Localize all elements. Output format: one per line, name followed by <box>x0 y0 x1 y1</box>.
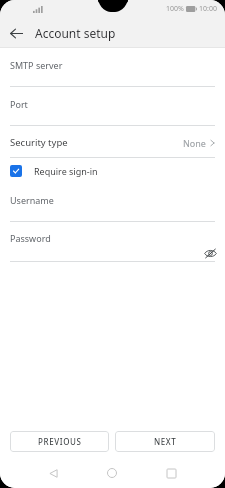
button[interactable]: SMTP server <box>0 48 225 87</box>
staticText: 100% <box>166 4 184 14</box>
button[interactable]: Port <box>0 87 225 126</box>
button[interactable]: Back <box>42 462 64 484</box>
button[interactable]: PREVIOUS <box>10 431 109 452</box>
staticText: Password <box>10 232 51 244</box>
button[interactable]: Back <box>4 21 28 45</box>
staticText: SMTP server <box>10 59 63 71</box>
staticText: NEXT <box>154 436 177 447</box>
button[interactable]: NEXT <box>115 431 215 452</box>
button[interactable]: Username <box>0 184 225 222</box>
button[interactable]: Recent apps <box>160 462 182 484</box>
button[interactable]: Home <box>101 462 123 484</box>
button[interactable]: Password <box>0 222 225 262</box>
staticText: Port <box>10 98 28 110</box>
button[interactable]: Show password <box>202 245 218 261</box>
button[interactable]: Require sign-in <box>0 158 225 184</box>
staticText: Username <box>10 194 54 206</box>
staticText: PREVIOUS <box>38 436 82 447</box>
staticText: None <box>183 137 206 149</box>
staticText: Account setup <box>35 25 116 41</box>
staticText: Security type <box>10 136 68 149</box>
staticText: 10:00 <box>199 4 217 14</box>
button[interactable]: Security type <box>0 126 225 158</box>
staticText: Require sign-in <box>34 165 98 177</box>
